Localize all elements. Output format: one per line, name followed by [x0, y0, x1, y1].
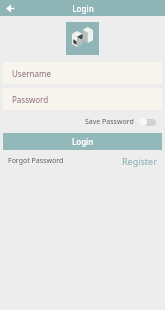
button[interactable]: Username [3, 62, 162, 84]
staticText: Login [72, 136, 94, 147]
button[interactable]: Forgot Password [8, 154, 64, 168]
button[interactable]: Login [3, 133, 162, 150]
button[interactable]: Password [3, 88, 162, 110]
button[interactable]: Register [122, 154, 157, 168]
button[interactable]: Back [3, 1, 17, 15]
staticText: Forgot Password [8, 156, 64, 166]
staticText: Login [72, 3, 94, 14]
button[interactable]: Save Password [83, 116, 158, 128]
staticText: Save Password [85, 117, 134, 127]
staticText: Register [122, 155, 157, 167]
staticText: Username [12, 68, 51, 79]
staticText: Password [12, 94, 49, 105]
